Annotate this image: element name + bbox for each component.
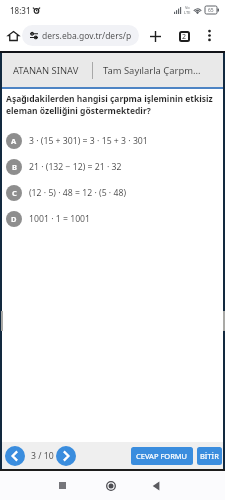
button[interactable]: A (6, 128, 219, 154)
staticText: CEVAP FORMU (136, 451, 188, 461)
staticText: Vo (185, 5, 190, 10)
button[interactable]: Next question (56, 446, 76, 466)
staticText: 1001 · 1 = 1001 (29, 213, 91, 225)
button[interactable]: Tabs (173, 25, 195, 47)
button[interactable]: ders.eba.gov.tr/ders/p (22, 25, 139, 46)
button[interactable]: ATANAN SINAV (2, 53, 92, 87)
staticText: ATANAN SINAV (13, 64, 79, 77)
staticText: 65 (208, 7, 214, 14)
staticText: (12 · 5) · 48 = 12 · (5 · 48) (29, 187, 126, 199)
button[interactable]: Recent apps (49, 472, 76, 499)
staticText: 18:31 (10, 5, 31, 16)
staticText: 2 (182, 32, 187, 42)
staticText: D (11, 214, 17, 224)
button[interactable]: More options (199, 20, 219, 51)
staticText: A (11, 136, 17, 146)
button[interactable]: Home (0, 20, 22, 51)
staticText: LTE (184, 10, 191, 15)
button[interactable]: New tab (144, 25, 166, 47)
button[interactable]: Previous question (5, 446, 25, 466)
staticText: B (12, 162, 17, 172)
staticText: BİTİR (200, 451, 219, 461)
button[interactable]: CEVAP FORMU (131, 447, 193, 465)
button[interactable]: C (6, 180, 219, 206)
staticText: ders.eba.gov.tr/ders/p (42, 30, 132, 42)
button[interactable]: Back (143, 472, 170, 499)
button[interactable]: D (6, 206, 219, 232)
staticText: 3 / 10 (31, 450, 54, 462)
staticText: C (12, 188, 17, 198)
staticText: Aşağıdakilerden hangisi çarpma işleminin… (6, 93, 213, 117)
staticText: Tam Sayılarla Çarpm... (103, 64, 201, 77)
button[interactable]: Home (97, 472, 124, 499)
button[interactable]: Tam Sayılarla Çarpm... (93, 53, 223, 87)
staticText: 3 · (15 + 301) = 3 · 15 + 3 · 301 (29, 135, 148, 147)
button[interactable]: BİTİR (197, 447, 222, 465)
button[interactable]: B (6, 154, 219, 180)
staticText: 21 · (132 − 12) = 21 · 32 (29, 161, 122, 173)
